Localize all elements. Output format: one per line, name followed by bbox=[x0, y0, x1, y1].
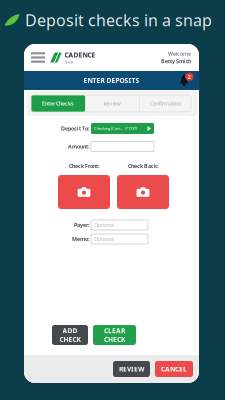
button[interactable]: CANCEL bbox=[155, 361, 193, 377]
staticText: Amount: bbox=[68, 143, 89, 150]
button[interactable]: Confirmation bbox=[140, 95, 191, 112]
staticText: Deposit checks in a snap bbox=[25, 9, 212, 31]
staticText: Confirmation bbox=[150, 100, 181, 107]
staticText: CLEAR bbox=[104, 326, 125, 335]
staticText: Checking (Cain... (*1737) bbox=[94, 126, 137, 131]
staticText: REVIEW bbox=[119, 365, 144, 373]
button[interactable]: ADD bbox=[52, 325, 88, 345]
staticText: Memo: bbox=[72, 235, 89, 243]
staticText: Enter Checks bbox=[42, 100, 74, 107]
staticText: Payer: bbox=[74, 221, 89, 229]
button[interactable]: Notifications bbox=[176, 74, 192, 87]
button[interactable]: REVIEW bbox=[113, 361, 150, 377]
button[interactable]: Checking (Cain... (*1737) bbox=[91, 123, 154, 134]
staticText: Optional bbox=[94, 235, 114, 243]
button[interactable]: Enter Checks bbox=[31, 95, 85, 112]
button[interactable]: Capture check front bbox=[58, 175, 110, 209]
staticText: ENTER DEPOSITS bbox=[83, 76, 139, 85]
staticText: CADENCE bbox=[64, 50, 95, 59]
staticText: Review bbox=[104, 100, 121, 107]
button[interactable]: CLEAR bbox=[93, 325, 136, 345]
staticText: Optional bbox=[94, 221, 114, 229]
button[interactable]: Review bbox=[85, 95, 139, 112]
staticText: ADD bbox=[62, 326, 77, 335]
staticText: CHECK bbox=[104, 335, 125, 344]
staticText: Check Front: bbox=[69, 162, 99, 170]
staticText: Check Back: bbox=[128, 162, 158, 170]
staticText: Deposit To: bbox=[61, 125, 89, 132]
button[interactable]: Capture check back bbox=[117, 175, 169, 209]
staticText: 2 bbox=[188, 73, 191, 80]
staticText: CANCEL bbox=[161, 365, 187, 373]
staticText: CHECK bbox=[59, 335, 80, 344]
staticText: Betty Smith bbox=[161, 58, 191, 65]
staticText: Bank bbox=[64, 59, 73, 65]
staticText: Welcome bbox=[168, 50, 191, 57]
button[interactable]: Menu bbox=[24, 44, 50, 71]
